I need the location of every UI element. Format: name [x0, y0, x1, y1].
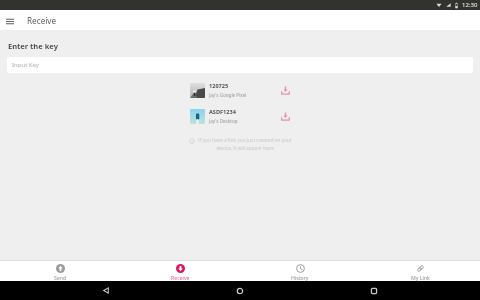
button[interactable]: Recent apps [366, 283, 381, 298]
button[interactable]: Open navigation menu [0, 11, 20, 31]
button[interactable]: History [240, 261, 360, 281]
staticText: Input Key [12, 61, 39, 69]
staticText: Jay's Google Pixel [209, 92, 247, 98]
button[interactable]: Back [98, 283, 113, 298]
staticText: Send [54, 274, 67, 281]
staticText: 120725 [209, 82, 229, 90]
staticText: Enter the key [8, 41, 58, 51]
button[interactable]: Download ASDF1234 [278, 109, 292, 123]
button[interactable]: Input Key [7, 57, 473, 73]
button[interactable]: My Link [360, 261, 480, 281]
staticText: If you have a link you just created on y… [198, 137, 292, 152]
staticText: Jay's Desktop [209, 118, 238, 124]
button[interactable]: Send [0, 261, 120, 281]
staticText: Receive [27, 15, 57, 26]
button[interactable]: Receive [120, 261, 240, 281]
staticText: My Link [411, 274, 430, 281]
staticText: ASDF1234 [209, 108, 236, 116]
button[interactable]: 120725 [0, 82, 480, 98]
staticText: History [291, 274, 309, 281]
button[interactable]: ASDF1234 [0, 108, 480, 124]
staticText: Receive [171, 274, 190, 281]
staticText: 12:30 [462, 1, 478, 9]
button[interactable]: Download 120725 [278, 83, 292, 97]
button[interactable]: Home [232, 283, 247, 298]
